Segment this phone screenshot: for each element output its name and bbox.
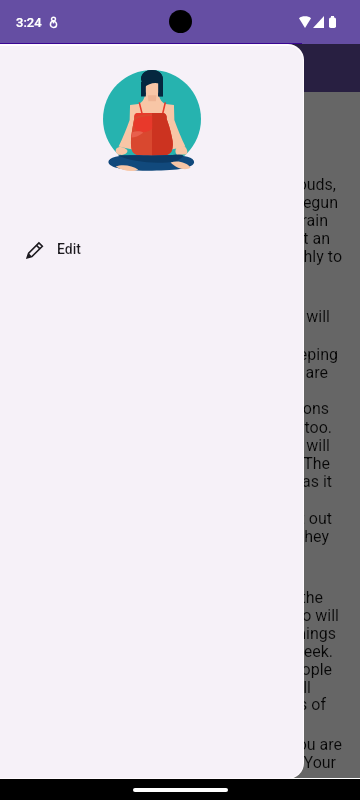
staticText: and the third trimester has just begun (0, 193, 338, 212)
staticText: grows. You can also expect an (0, 229, 330, 248)
staticText: may start to show up too. (0, 418, 332, 437)
staticText: arrangements of who will (0, 606, 339, 625)
staticText: Your baby is no longer the size of cloud… (0, 175, 336, 194)
staticText: as the lungs mature and the brain (0, 211, 328, 230)
staticText: 3:24 (16, 15, 42, 30)
staticText: Edit (57, 241, 81, 257)
staticText: doing really great. Your (0, 753, 336, 772)
staticText: nursery can be finished as it (0, 472, 332, 491)
staticText: around you. All (0, 678, 311, 697)
staticText: Talk to the people (0, 660, 332, 679)
staticText: fortnightly — your body will (0, 307, 330, 326)
staticText: change a lot: swelling, sleeping (0, 345, 338, 364)
staticText: about the lists of (0, 695, 326, 714)
staticText: common. Braxton Hicks contractions (0, 399, 329, 418)
staticText: gets harder to move about out (0, 509, 332, 528)
button[interactable]: Edit (0, 225, 303, 273)
staticText: Practising relaxation now will (0, 436, 330, 455)
staticText: through the first week. (0, 642, 333, 661)
staticText: increase in visits from monthly to (0, 247, 342, 266)
staticText: really help during labour. The (0, 454, 330, 473)
staticText: troubles and back pains are (0, 363, 328, 382)
staticText: Remember that you are (0, 735, 342, 754)
staticText: help out with daily things (0, 624, 336, 643)
staticText: and about in week 34 as they (0, 527, 329, 546)
staticText: Start thinking about the (0, 588, 323, 607)
